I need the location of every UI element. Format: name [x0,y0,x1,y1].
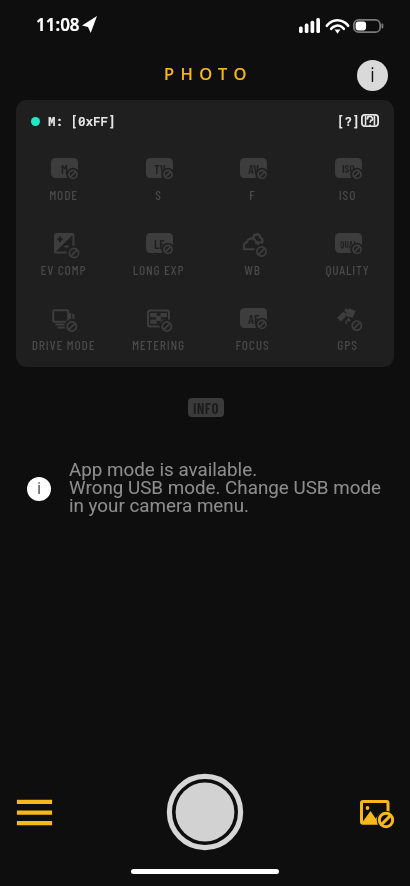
staticText: 11:08 [36,13,80,36]
staticText: AF [248,311,260,326]
button[interactable]: DRIVE MODE [16,300,111,367]
staticText: MODE [16,186,111,202]
staticText: INFO [193,399,219,417]
button[interactable]: Gallery [352,792,396,836]
button[interactable]: METERING [111,300,206,367]
button[interactable]: EV COMP [16,225,111,295]
button[interactable]: M [16,150,111,220]
staticText: WB [205,261,300,277]
staticText: ISO [300,186,394,202]
button[interactable]: Menu [8,788,56,836]
staticText: LE [154,236,165,251]
staticText: ISO [342,162,355,175]
staticText: [?] [337,113,360,129]
button[interactable]: LE [111,225,206,295]
staticText: F [205,186,300,202]
staticText: DRIVE MODE [16,336,111,352]
staticText: i [37,477,42,499]
button[interactable]: AF [205,300,300,367]
button[interactable]: Info [357,60,388,91]
staticText: S [111,186,206,202]
button[interactable]: GPS [300,300,394,367]
button[interactable]: AV [205,150,300,220]
staticText: METERING [111,336,206,352]
staticText: LONG EXP [111,261,206,277]
staticText: TV [154,161,166,176]
staticText: QUAL [340,238,358,249]
button[interactable]: ISO [300,150,394,220]
staticText: QUALITY [300,261,394,277]
staticText: FOCUS [205,336,300,352]
staticText: PHOTO [164,62,253,84]
button[interactable]: TV [111,150,206,220]
staticText: App mode is available. Wrong USB mode. C… [69,459,381,517]
staticText: EV COMP [16,261,111,277]
button[interactable]: INFO [188,398,224,417]
button[interactable]: WB [205,225,300,295]
button[interactable]: QUAL [300,225,394,295]
staticText: i [370,62,375,88]
button[interactable]: Shutter [166,773,244,851]
staticText: GPS [300,336,394,352]
staticText: AV [248,161,260,176]
staticText: M: [0xFF] [48,113,116,129]
staticText: M [61,161,68,176]
